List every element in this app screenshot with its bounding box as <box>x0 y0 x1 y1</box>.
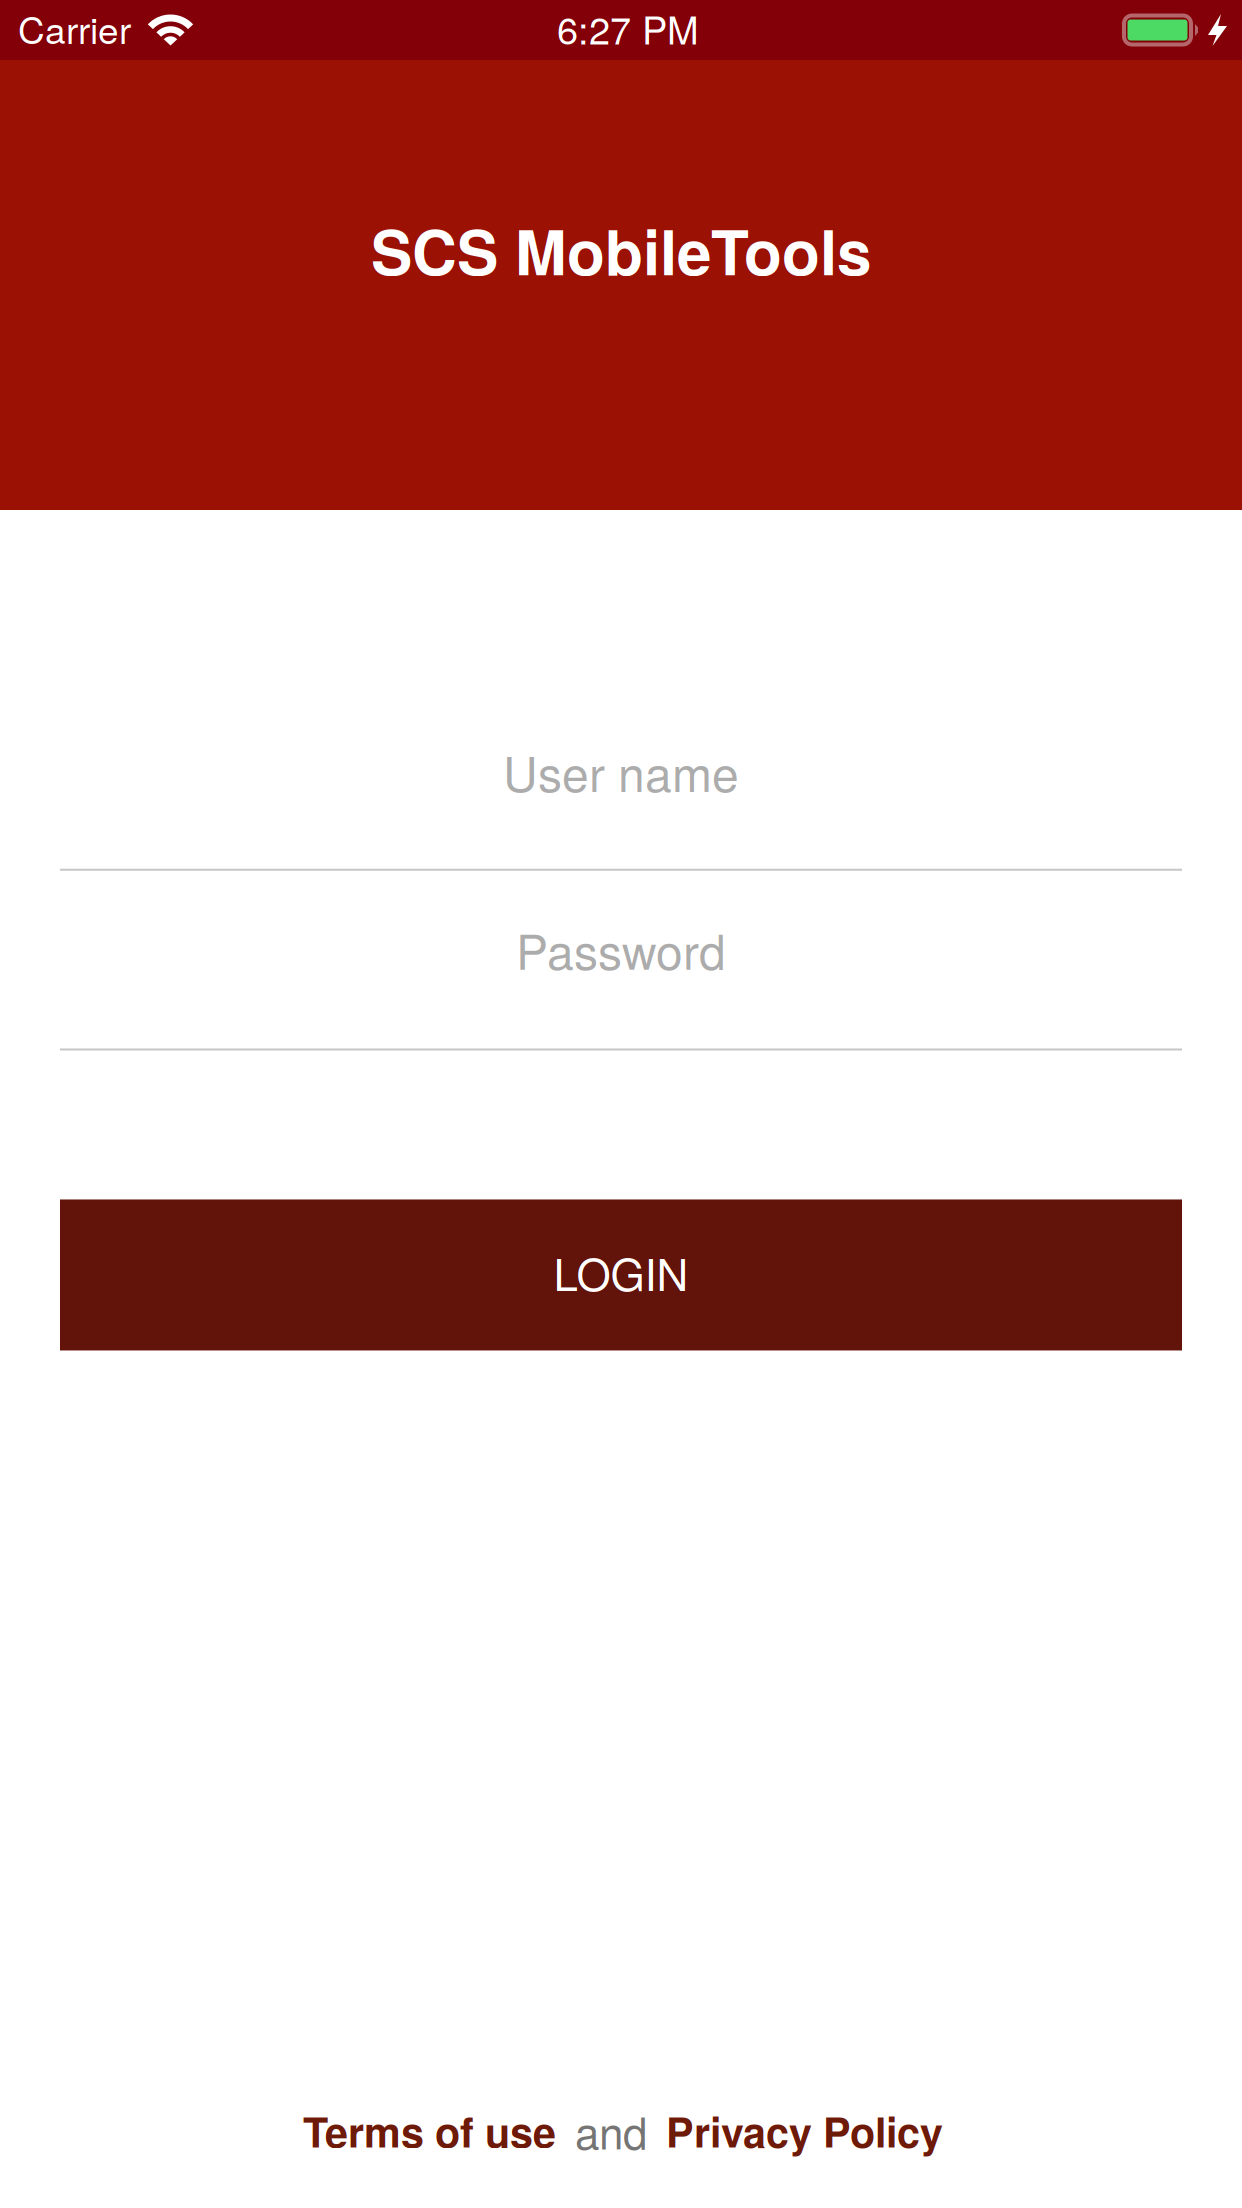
staticText: Privacy Policy <box>666 2101 943 2160</box>
staticText: SCS MobileTools <box>371 206 871 294</box>
button[interactable]: Terms of use <box>303 2101 556 2160</box>
staticText: LOGIN <box>553 1240 688 1303</box>
staticText: User name <box>503 737 739 806</box>
staticText: and <box>575 2099 647 2162</box>
staticText: Password <box>516 915 726 983</box>
staticText: Carrier <box>18 1 131 54</box>
staticText: Terms of use <box>303 2101 556 2160</box>
button[interactable]: Privacy Policy <box>666 2101 943 2160</box>
button[interactable]: LOGIN <box>60 1199 1182 1350</box>
staticText: 6:27 PM <box>557 1 699 55</box>
